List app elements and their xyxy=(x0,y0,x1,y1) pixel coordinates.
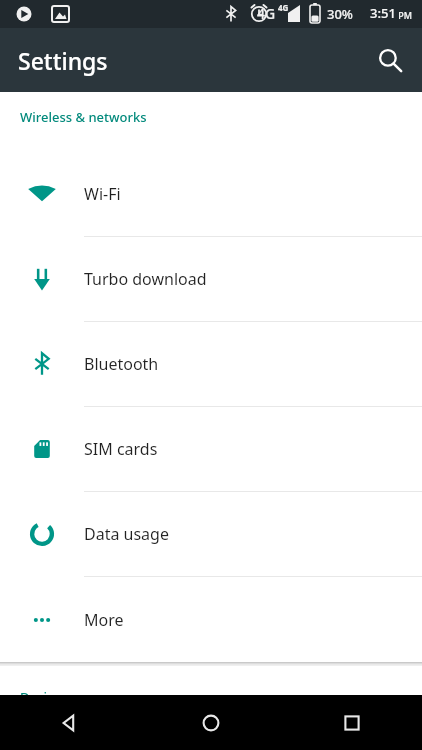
button[interactable]: Back xyxy=(0,695,140,750)
button[interactable]: Bluetooth xyxy=(0,322,422,407)
staticText: Device xyxy=(20,688,61,706)
button[interactable]: Recent apps xyxy=(281,695,422,750)
button[interactable]: More xyxy=(0,577,422,662)
button[interactable]: Data usage xyxy=(0,492,422,577)
button[interactable]: SIM cards xyxy=(0,407,422,492)
button[interactable]: Search xyxy=(366,36,414,84)
staticText: 4G xyxy=(278,2,289,13)
staticText: SIM cards xyxy=(84,438,158,460)
staticText: Wi-Fi xyxy=(84,183,121,205)
staticText: 30% xyxy=(327,5,353,23)
staticText: Settings xyxy=(18,45,108,76)
button[interactable]: Turbo download xyxy=(0,237,422,322)
button[interactable]: Wi-Fi xyxy=(0,152,422,237)
staticText: Wireless & networks xyxy=(20,108,147,126)
staticText: 4G xyxy=(257,4,276,23)
staticText: Turbo download xyxy=(84,268,207,290)
staticText: 3:51 xyxy=(370,4,396,22)
staticText: More xyxy=(84,609,124,631)
button[interactable]: Home xyxy=(140,695,281,750)
staticText: Data usage xyxy=(84,523,169,545)
staticText: Bluetooth xyxy=(84,353,159,375)
staticText: PM xyxy=(396,9,413,21)
